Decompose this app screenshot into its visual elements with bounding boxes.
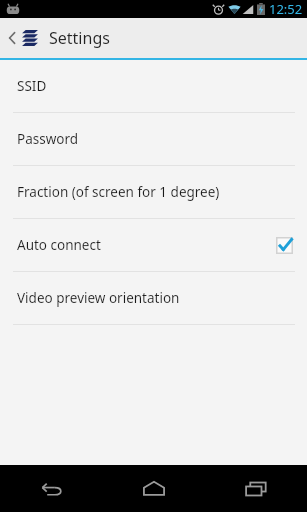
button[interactable]: Password [0, 113, 307, 165]
staticText: Fraction (of screen for 1 degree) [17, 183, 293, 201]
staticText: Password [17, 130, 293, 148]
staticText: SSID [17, 77, 293, 95]
button[interactable]: Fraction (of screen for 1 degree) [0, 166, 307, 218]
button[interactable]: Recent apps [205, 465, 307, 512]
staticText: Video preview orientation [17, 289, 293, 307]
other: Auto connect enabled [276, 237, 293, 254]
staticText: Settings [49, 27, 110, 49]
staticText: 12:52 [269, 0, 303, 18]
button[interactable]: SSID [0, 60, 307, 112]
button[interactable]: Back [0, 18, 307, 58]
button[interactable]: Home [103, 465, 205, 512]
button[interactable]: Video preview orientation [0, 272, 307, 324]
staticText: Auto connect [17, 236, 276, 254]
button[interactable]: Back [0, 465, 103, 512]
other: Back [6, 29, 18, 47]
button[interactable]: Auto connect [0, 219, 307, 271]
